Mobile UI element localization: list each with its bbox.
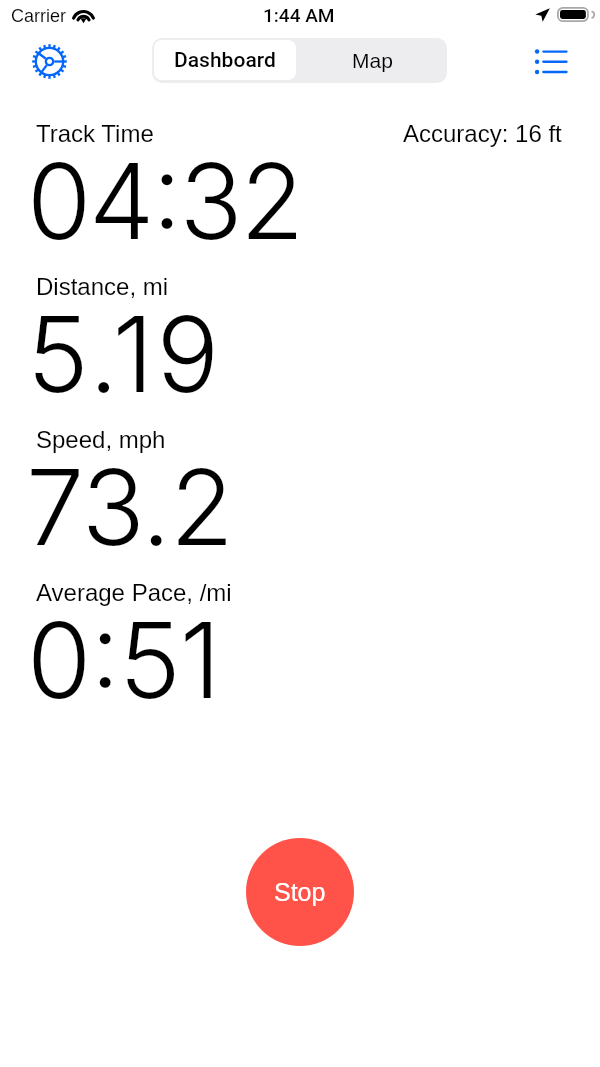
staticText: Map — [352, 49, 393, 72]
button[interactable]: Dashboard — [154, 40, 296, 80]
staticText: Speed, mph — [36, 426, 166, 453]
staticText: 0:51 — [27, 597, 220, 723]
staticText: Track Time — [36, 120, 154, 147]
staticText: 04:32 — [27, 138, 302, 264]
staticText: Distance, mi — [36, 273, 169, 300]
staticText: Carrier — [11, 6, 67, 26]
button[interactable]: Map — [300, 40, 445, 80]
staticText: Dashboard — [174, 48, 276, 73]
staticText: 5.19 — [27, 291, 223, 417]
button[interactable]: List — [531, 46, 571, 76]
button[interactable]: Stop — [246, 838, 354, 946]
button[interactable]: Settings — [28, 40, 71, 83]
staticText: 73.2 — [26, 444, 234, 570]
staticText: Stop — [274, 878, 326, 906]
staticText: 1:44 AM — [263, 4, 335, 26]
staticText: Accuracy: 16 ft — [403, 120, 562, 147]
staticText: Average Pace, /mi — [36, 579, 232, 606]
